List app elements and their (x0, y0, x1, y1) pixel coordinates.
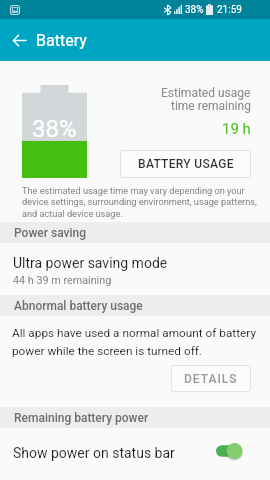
staticText: Estimated usage (161, 86, 251, 100)
button[interactable]: Ultra power saving mode (0, 243, 270, 295)
button[interactable]: Show power on status bar (213, 437, 253, 465)
staticText: Remaining battery power (14, 411, 149, 425)
button[interactable]: Navigate up (6, 27, 32, 53)
staticText: The estimated usage time may vary depend… (22, 185, 258, 220)
staticText: 19 h (222, 120, 251, 138)
staticText: Battery (36, 31, 87, 50)
staticText: 44 h 39 m remaining (13, 274, 112, 287)
staticText: 38% (185, 4, 204, 16)
button[interactable]: DETAILS (171, 365, 251, 392)
button[interactable]: Show power on status bar (0, 427, 270, 477)
staticText: All apps have used a normal amount of ba… (12, 326, 264, 358)
staticText: DETAILS (184, 372, 238, 386)
staticText: time remaining (171, 99, 251, 113)
staticText: 21:59 (217, 4, 242, 16)
staticText: BATTERY USAGE (138, 157, 234, 171)
staticText: 38% (32, 115, 77, 143)
staticText: Ultra power saving mode (13, 255, 168, 271)
staticText: Show power on status bar (13, 445, 175, 461)
staticText: Power saving (14, 226, 86, 240)
staticText: Abnormal battery usage (14, 299, 143, 313)
button[interactable]: BATTERY USAGE (120, 150, 251, 178)
